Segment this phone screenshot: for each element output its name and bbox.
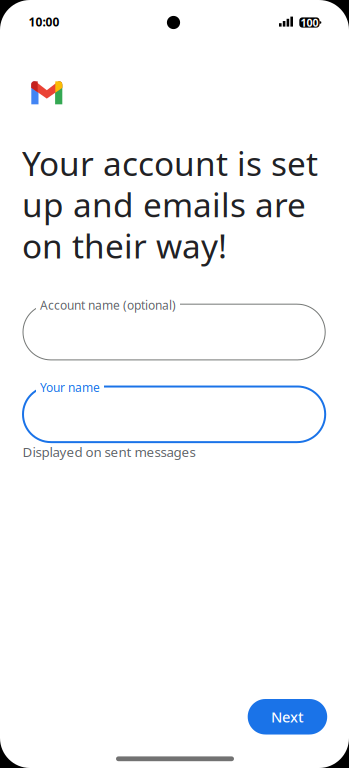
staticText: Next <box>271 707 304 726</box>
staticText: Your name <box>40 379 100 395</box>
button[interactable]: Next <box>248 699 327 734</box>
staticText: up and emails are <box>22 182 306 227</box>
staticText: Displayed on sent messages <box>22 443 195 461</box>
staticText: Account name (optional) <box>40 297 176 313</box>
staticText: Your account is set <box>22 141 318 185</box>
staticText: 10:00 <box>28 14 59 30</box>
staticText: on their way! <box>22 223 227 268</box>
staticText: 100 <box>300 15 318 30</box>
